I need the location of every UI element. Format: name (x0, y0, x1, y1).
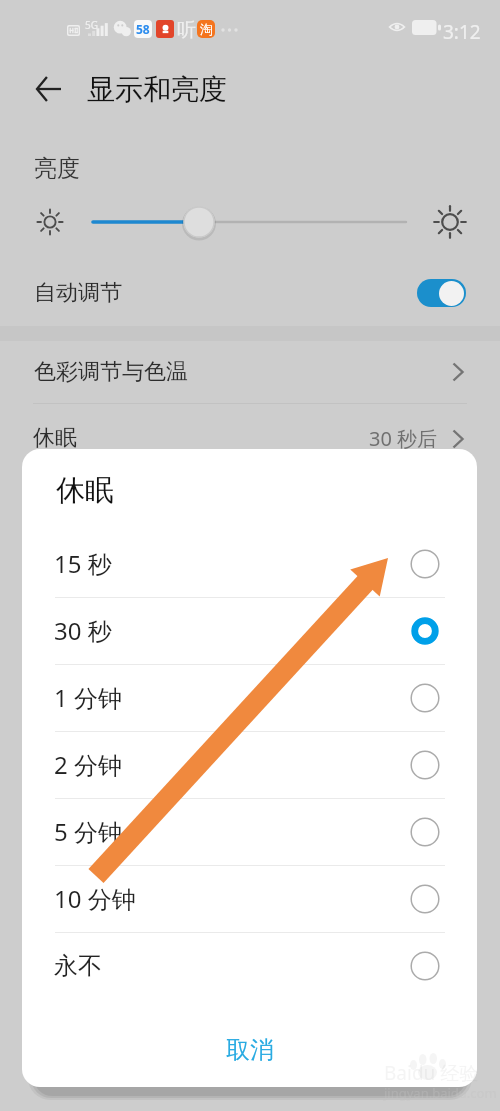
staticText: 1 分钟 (54, 681, 122, 714)
button[interactable]: 30 秒 (22, 597, 477, 664)
staticText: 永不 (54, 951, 102, 981)
button[interactable]: 永不 (22, 932, 477, 999)
button[interactable]: 1 分钟 (22, 664, 477, 731)
staticText: 亮度 (34, 154, 80, 183)
button[interactable]: Back (27, 67, 71, 111)
staticText: 休眠 (56, 472, 114, 509)
staticText: 30 秒 (54, 614, 112, 647)
staticText: 3:12 (443, 19, 481, 45)
staticText: 听 (177, 18, 196, 42)
button[interactable]: 自动调节 (0, 263, 500, 323)
button[interactable]: 10 分钟 (22, 865, 477, 932)
staticText: 5G (85, 18, 98, 32)
staticText: 5 分钟 (54, 815, 122, 848)
button[interactable]: 休眠 (0, 407, 500, 469)
button[interactable]: 取消 (22, 1021, 477, 1079)
staticText: 58 (136, 21, 150, 37)
button[interactable]: 色彩调节与色温 (0, 341, 500, 403)
button[interactable]: 15 秒 (22, 530, 477, 597)
staticText: 10 分钟 (54, 882, 136, 915)
staticText: jingyan.baidu.com (384, 1084, 497, 1102)
staticText: 显示和亮度 (87, 72, 227, 107)
staticText: 30 秒后 (369, 425, 438, 452)
staticText: 淘 (200, 21, 213, 37)
staticText: 2 分钟 (54, 748, 122, 781)
button[interactable]: 5 分钟 (22, 798, 477, 865)
staticText: Baidu 经验 (384, 1060, 479, 1086)
staticText: 色彩调节与色温 (34, 358, 188, 386)
staticText: 自动调节 (34, 279, 122, 307)
staticText: 取消 (226, 1035, 274, 1065)
staticText: 15 秒 (54, 547, 112, 580)
button[interactable]: 2 分钟 (22, 731, 477, 798)
staticText: 休眠 (33, 424, 77, 452)
